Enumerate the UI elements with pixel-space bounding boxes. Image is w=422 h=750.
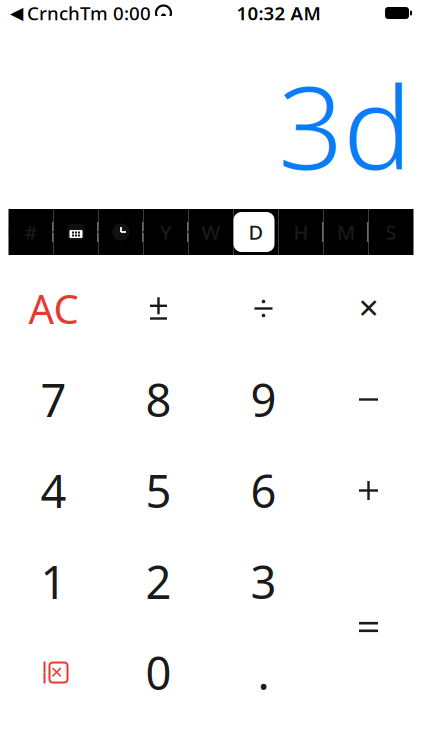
staticText: 9 [250,369,276,430]
button[interactable]: Multiply [316,263,421,354]
staticText: 3 [250,551,276,612]
button[interactable]: D [233,209,278,255]
button[interactable]: Number [8,209,53,255]
button[interactable]: Clock [98,209,143,255]
button[interactable]: 3 [211,536,316,627]
staticText: # [24,219,37,245]
staticText: 8 [145,369,171,430]
button[interactable]: 2 [106,536,211,627]
button[interactable]: W [188,209,233,255]
button[interactable]: Plus [316,445,421,536]
staticText: 5 [145,460,171,521]
button[interactable]: S [368,209,413,255]
staticText: 0 [145,642,171,703]
staticText: 6 [250,460,276,521]
button[interactable]: Minus [316,354,421,445]
staticText: W [201,219,220,245]
button[interactable]: Calendar [53,209,98,255]
button[interactable]: Equals [316,536,421,718]
staticText: 1 [40,551,66,612]
staticText: . [257,642,269,703]
button[interactable]: 0 [106,627,211,718]
button[interactable]: 5 [106,445,211,536]
button[interactable]: 8 [106,354,211,445]
staticText: 4 [40,460,66,521]
button[interactable]: Divide [211,263,316,354]
button[interactable]: Y [143,209,188,255]
button[interactable]: 6 [211,445,316,536]
staticText: 7 [40,369,66,430]
staticText: AC [28,282,78,335]
button[interactable]: All clear [1,263,106,354]
staticText: M [337,219,355,245]
button[interactable]: Plus minus [106,263,211,354]
button[interactable]: 7 [1,354,106,445]
staticText: 3d [278,49,412,201]
button[interactable]: 9 [211,354,316,445]
staticText: ✕ [50,663,63,682]
staticText: H [293,219,308,245]
staticText: ◀ [10,3,23,23]
staticText: CrnchTm 0:00 [27,1,151,25]
staticText: 10:32 AM [236,1,320,25]
staticText: S [385,219,396,245]
button[interactable]: 4 [1,445,106,536]
staticText: ✕ [357,293,379,324]
staticText: 2 [145,551,171,612]
button[interactable]: 1 [1,536,106,627]
staticText: Y [160,219,172,245]
button[interactable]: Delete [1,627,106,718]
button[interactable]: M [323,209,368,255]
button[interactable]: H [278,209,323,255]
staticText: D [248,219,263,245]
button[interactable]: Decimal point [211,627,316,718]
